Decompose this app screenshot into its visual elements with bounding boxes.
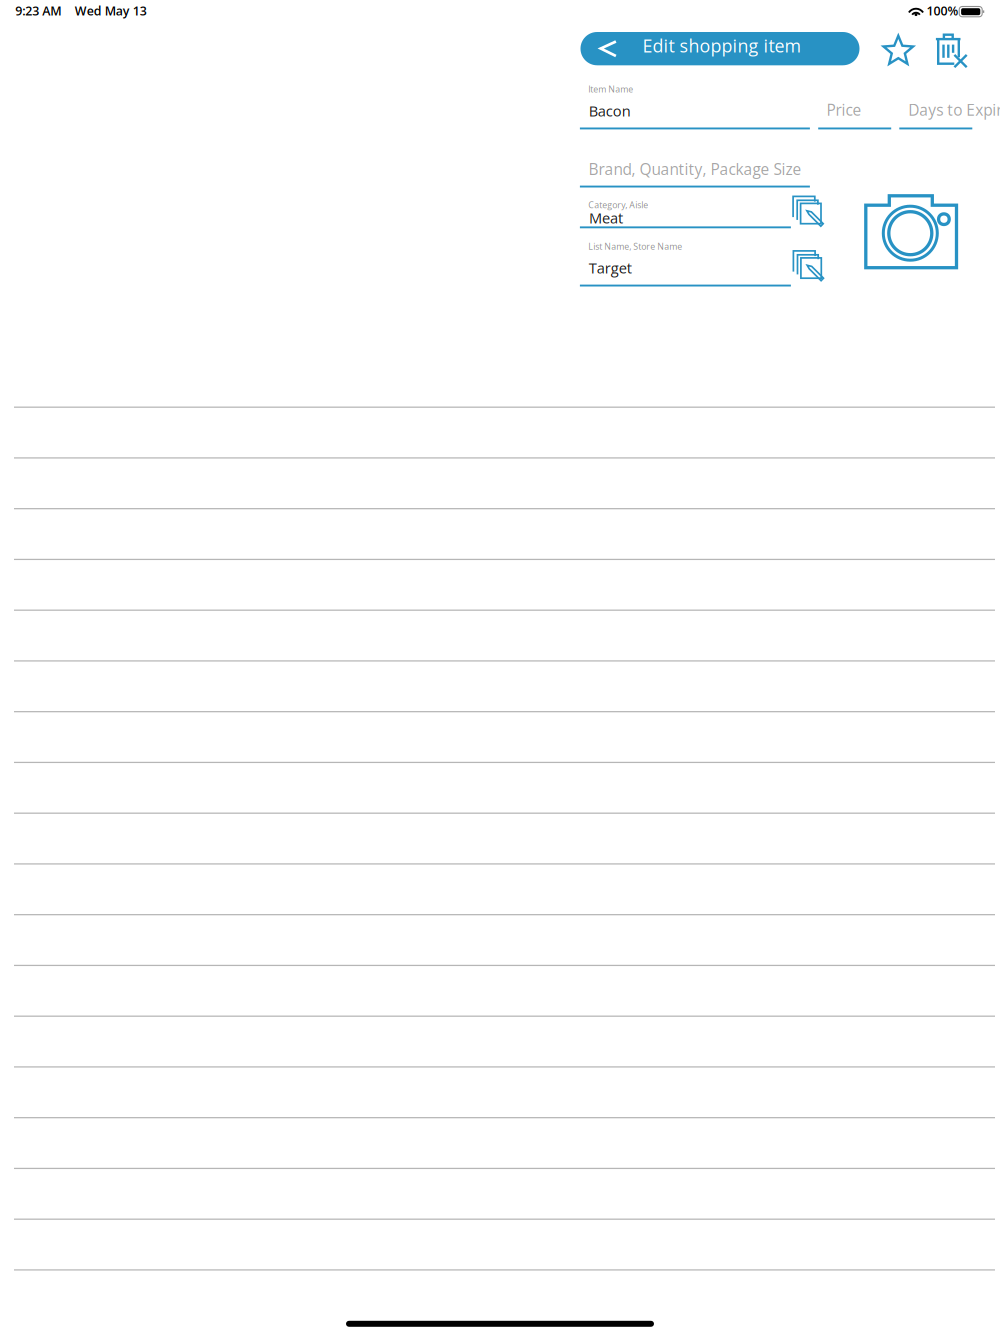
staticText: Target [589, 258, 632, 278]
button[interactable]: Favorite [881, 33, 914, 65]
button[interactable]: Choose list [792, 250, 824, 282]
staticText: Item Name [588, 83, 633, 95]
button[interactable]: Delete [932, 32, 964, 66]
staticText: List Name, Store Name [588, 240, 682, 252]
staticText: Category, Aisle [588, 199, 648, 211]
staticText: Wed May 13 [75, 2, 147, 19]
staticText: Meat [589, 208, 623, 228]
staticText: Brand, Quantity, Package Size [588, 158, 801, 180]
staticText: 100% [926, 2, 958, 19]
button[interactable]: Choose category [792, 195, 824, 227]
staticText: Edit shopping item [642, 33, 801, 58]
staticText: 9:23 AM [15, 2, 61, 19]
button[interactable]: Edit shopping item [580, 32, 859, 65]
staticText: Days to Expire [908, 99, 1000, 120]
staticText: Bacon [589, 101, 631, 121]
button[interactable]: Add photo [864, 194, 959, 270]
staticText: Price [826, 99, 861, 120]
